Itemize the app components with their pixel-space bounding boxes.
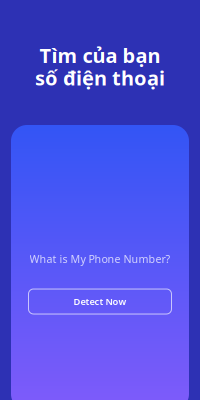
staticText: Detect Now: [73, 295, 126, 308]
button[interactable]: Detect Now: [28, 289, 171, 314]
staticText: Tìm của bạn: [39, 42, 160, 69]
staticText: What is My Phone Number?: [29, 252, 170, 266]
staticText: số điện thoại: [35, 65, 165, 91]
